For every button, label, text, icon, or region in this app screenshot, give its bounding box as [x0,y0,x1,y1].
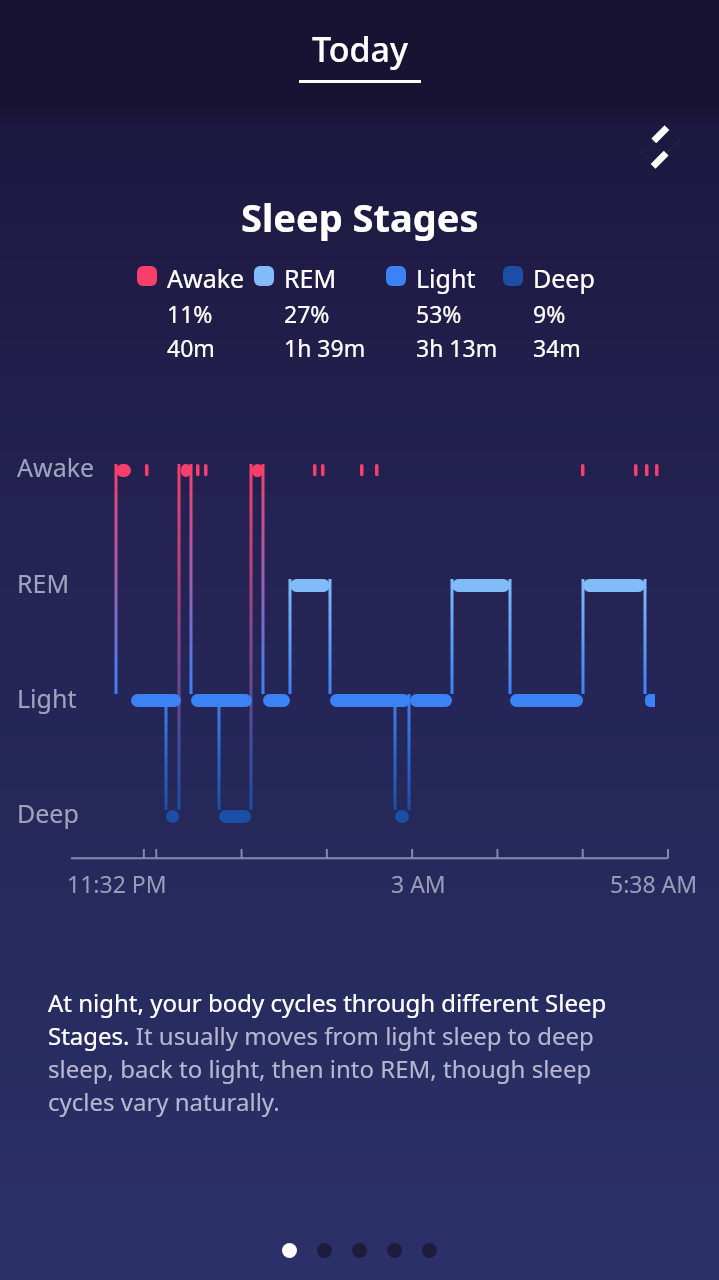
button[interactable] [317,1243,332,1258]
staticText: 3 AM [391,868,446,899]
staticText: Today [312,26,408,72]
button[interactable] [352,1243,367,1258]
button[interactable]: Deep [503,261,603,363]
button[interactable]: Today [299,26,421,83]
button[interactable] [422,1243,437,1258]
button[interactable]: Light [386,261,503,363]
staticText: REM [17,566,70,600]
staticText: 5:38 AM [610,868,698,899]
staticText: Awake [167,261,245,295]
staticText: Light [17,681,77,715]
staticText: Sleep Stages [241,191,479,243]
staticText: 9% [533,298,566,329]
staticText: Awake [17,450,95,484]
staticText: Deep [17,796,79,830]
button[interactable]: Collapse [629,116,691,178]
button[interactable] [282,1243,297,1258]
staticText: 11:32 PM [67,868,167,899]
staticText: 11% [167,298,213,329]
staticText: 27% [284,298,330,329]
staticText: At night, your body cycles through diffe… [48,986,640,1118]
button[interactable] [387,1243,402,1258]
staticText: Light [416,261,476,295]
staticText: 53% [416,298,462,329]
staticText: 3h 13m [416,332,498,363]
staticText: 1h 39m [284,332,366,363]
staticText: REM [284,261,337,295]
staticText: 34m [533,332,581,363]
button[interactable]: Awake [137,261,254,363]
button[interactable]: REM [254,261,386,363]
staticText: 40m [167,332,215,363]
staticText: Deep [533,261,595,295]
